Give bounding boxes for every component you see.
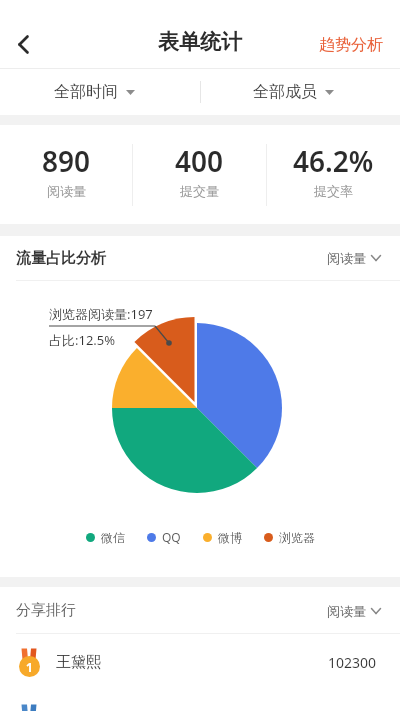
staticText: 阅读量 [327, 603, 366, 619]
button[interactable] [5, 24, 41, 64]
staticText: 阅读量 [327, 250, 366, 266]
button[interactable]: 1 [0, 634, 400, 690]
button[interactable]: 全部成员 [200, 69, 400, 115]
staticText: 1 [26, 659, 33, 675]
staticText: 46.2% [293, 142, 374, 180]
staticText: 102300 [328, 653, 377, 672]
staticText: 微博 [218, 530, 242, 545]
button[interactable]: 阅读量 [327, 603, 381, 619]
staticText: 提交量 [180, 183, 219, 199]
staticText: 浏览器 [279, 530, 315, 545]
staticText: 400 [175, 142, 224, 180]
staticText: 表单统计 [158, 29, 242, 55]
staticText: QQ [162, 529, 181, 545]
button[interactable]: 全部时间 [0, 69, 200, 115]
staticText: 分享排行 [16, 601, 76, 620]
staticText: 王黛熙 [56, 653, 101, 672]
staticText: 阅读量 [47, 183, 86, 199]
button[interactable]: 趋势分析 [319, 35, 383, 55]
staticText: 全部成员 [253, 82, 317, 102]
button[interactable] [0, 690, 400, 711]
staticText: 占比:12.5% [49, 331, 116, 349]
staticText: 890 [42, 142, 91, 180]
staticText: 提交率 [314, 183, 353, 199]
button[interactable]: 阅读量 [327, 250, 381, 266]
staticText: 浏览器阅读量:197 [49, 305, 153, 323]
staticText: 微信 [101, 530, 125, 545]
staticText: 趋势分析 [319, 35, 383, 55]
staticText: 流量占比分析 [16, 249, 106, 268]
staticText: 全部时间 [54, 82, 118, 102]
